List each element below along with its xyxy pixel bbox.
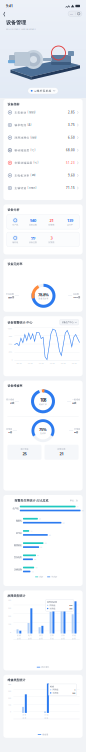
staticText: 不完好 bbox=[51, 576, 57, 578]
staticText: 物流输送 bbox=[14, 544, 22, 547]
staticText: 报警发生率统计·占比总览 bbox=[15, 498, 49, 502]
staticText: 报警数 bbox=[48, 241, 54, 244]
staticText: 99 bbox=[31, 235, 35, 241]
staticText: 不完好数 bbox=[6, 293, 14, 295]
button[interactable]: More bbox=[68, 11, 82, 16]
staticText: 18 bbox=[35, 566, 37, 569]
staticText: 当期值 bbox=[49, 607, 55, 610]
staticText: 设备生产中心 bbox=[62, 321, 74, 324]
button[interactable]: 驱动端温度 (℃) bbox=[3, 144, 83, 156]
staticText: 3 bbox=[50, 235, 52, 241]
staticText: 同期值 bbox=[52, 688, 58, 691]
staticText: 维修工单 bbox=[39, 403, 47, 405]
button[interactable]: 设备生产中心 bbox=[60, 320, 79, 325]
staticText: 累计维修 bbox=[6, 398, 14, 401]
staticText: 非驱动端温度 (℃) bbox=[15, 161, 39, 164]
staticText: 25% bbox=[8, 350, 12, 353]
button[interactable]: 非驱动端温度 (℃) bbox=[3, 156, 83, 169]
button[interactable]: 1#螺杆泵机组 bbox=[28, 88, 58, 94]
staticText: 电气 bbox=[28, 634, 32, 637]
staticText: 87次 bbox=[10, 401, 14, 404]
staticText: 完成率 bbox=[40, 432, 46, 435]
staticText: 62 bbox=[62, 521, 64, 524]
staticText: 212 bbox=[69, 604, 72, 607]
staticText: 设备指标 bbox=[7, 102, 19, 106]
staticText: 当期值 bbox=[52, 692, 58, 694]
staticText: 仪表 bbox=[61, 634, 65, 637]
staticText: 检修 bbox=[50, 685, 54, 688]
staticText: 公辅设施 bbox=[14, 568, 22, 571]
staticText: 9.60 bbox=[68, 173, 75, 177]
staticText: 检修 bbox=[44, 717, 48, 719]
staticText: 10 bbox=[30, 530, 32, 532]
button[interactable]: 主轴转速 (r/min) bbox=[3, 182, 83, 194]
staticText: 78.8% bbox=[38, 292, 49, 297]
staticText: 主泵振动 (mm/s) bbox=[15, 111, 36, 114]
button[interactable]: 润滑油液位 (mm) bbox=[3, 131, 83, 144]
staticText: 辅机组 bbox=[12, 241, 18, 244]
staticText: 0 bbox=[10, 710, 11, 713]
staticText: 故障类型统计 bbox=[7, 594, 25, 597]
staticText: 设备预警统计-中心 bbox=[7, 320, 32, 324]
staticText: 75% bbox=[39, 427, 47, 432]
staticText: 400 bbox=[8, 598, 11, 601]
staticText: 12 bbox=[31, 570, 33, 573]
staticText: 已维修 bbox=[74, 428, 80, 430]
staticText: 400 bbox=[8, 683, 11, 686]
staticText: 日常 bbox=[22, 714, 26, 716]
staticText: 待维修 bbox=[6, 428, 12, 430]
staticText: 一般维修 bbox=[72, 398, 80, 401]
staticText: 12:00 bbox=[38, 362, 43, 365]
staticText: 14台 bbox=[8, 430, 12, 434]
staticText: 装配线 bbox=[16, 519, 22, 522]
staticText: 100 bbox=[8, 623, 11, 625]
staticText: 控制 bbox=[50, 634, 54, 637]
staticText: 26 bbox=[40, 546, 42, 548]
staticText: 50% bbox=[8, 343, 12, 345]
staticText: 动力站 bbox=[16, 531, 22, 534]
staticText: 设备分析 bbox=[7, 208, 19, 211]
button[interactable]: 主泵振动 (mm/s) bbox=[3, 106, 83, 119]
button[interactable]: 轴承电流 (A) bbox=[3, 119, 83, 131]
staticText: 四季度故障 bbox=[47, 601, 57, 603]
staticText: 14:00 bbox=[49, 362, 54, 365]
staticText: 2.85 bbox=[68, 110, 75, 114]
staticText: 设备完好率 bbox=[7, 262, 22, 266]
staticText: 0 bbox=[11, 358, 12, 361]
staticText: 100 bbox=[8, 703, 11, 706]
staticText: 71.15 bbox=[66, 186, 75, 190]
staticText: 68.00 bbox=[66, 148, 75, 152]
staticText: 机械 bbox=[17, 634, 21, 637]
staticText: 生产线 bbox=[12, 223, 18, 226]
staticText: 08:00 bbox=[16, 362, 21, 365]
staticText: 同比增长 bbox=[41, 666, 49, 668]
staticText: 10:00 bbox=[27, 362, 32, 365]
staticText: 94台 bbox=[74, 430, 78, 434]
staticText: 16 bbox=[34, 558, 36, 561]
staticText: 空压机房 bbox=[14, 556, 22, 559]
staticText: 其他 bbox=[72, 634, 76, 637]
staticText: 设备完好率 bbox=[38, 297, 48, 300]
button[interactable]: Back bbox=[0, 9, 9, 19]
staticText: 同期值 bbox=[49, 604, 55, 606]
staticText: 累计维修 bbox=[20, 448, 28, 450]
staticText: 108 bbox=[40, 397, 46, 403]
staticText: 完好数 bbox=[73, 293, 79, 295]
staticText: 300 bbox=[8, 607, 11, 609]
staticText: 75% bbox=[8, 335, 12, 337]
staticText: 21 bbox=[49, 218, 53, 223]
staticText: 200 bbox=[8, 615, 11, 617]
staticText: 18:00 bbox=[72, 362, 77, 365]
staticText: 保养 bbox=[22, 717, 26, 719]
staticText: 故障 bbox=[72, 637, 76, 640]
staticText: 完好 bbox=[39, 576, 43, 578]
staticText: 主轴转速 (r/min) bbox=[15, 186, 37, 190]
button[interactable]: 主电机功率 (kW) bbox=[3, 169, 83, 182]
staticText: 系统 bbox=[50, 637, 54, 640]
staticText: 生产线 bbox=[12, 507, 18, 510]
staticText: 21 bbox=[37, 554, 39, 557]
staticText: 24 bbox=[39, 517, 41, 520]
staticText: 33 bbox=[44, 542, 46, 544]
staticText: 40 bbox=[49, 534, 51, 536]
staticText: 91 bbox=[77, 505, 79, 508]
